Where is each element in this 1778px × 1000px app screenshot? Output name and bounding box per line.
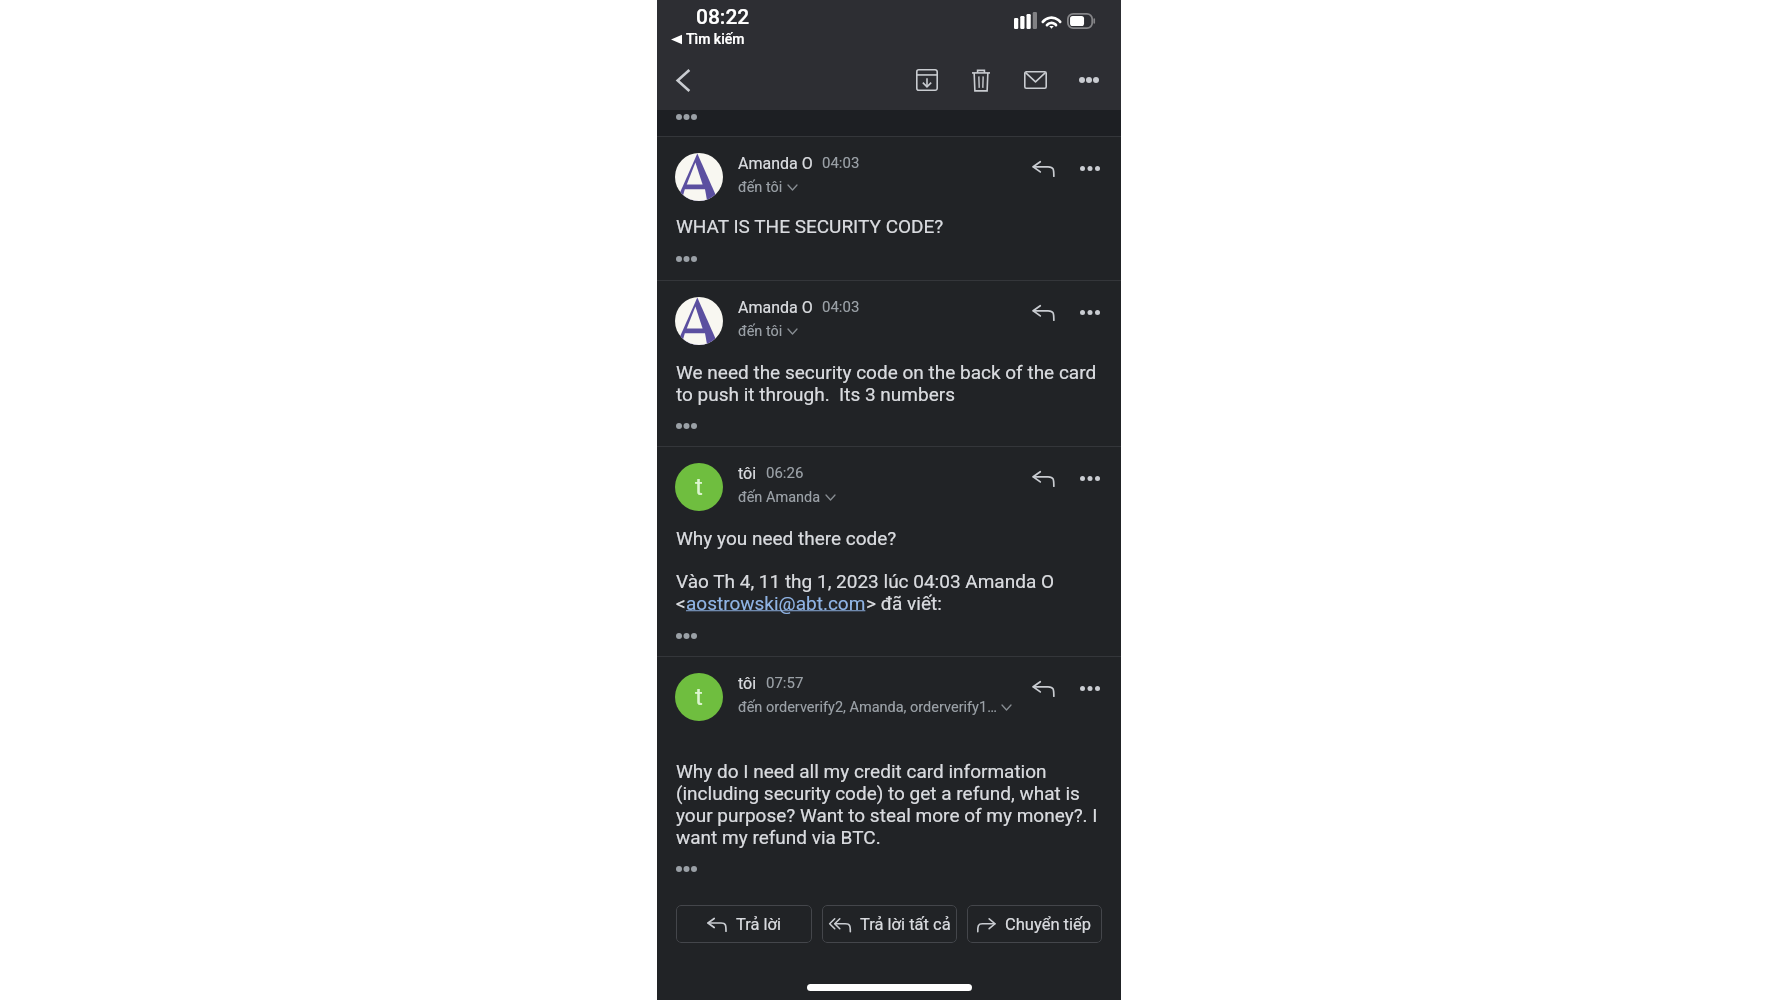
staticText: > đã viết: <box>866 592 942 614</box>
staticText: Why you need there code? <box>676 527 897 549</box>
button[interactable]: Hiện nội dung rút gọn <box>676 256 697 262</box>
staticText: Amanda O <box>738 154 813 173</box>
button[interactable]: Tùy chọn khác <box>1073 670 1107 706</box>
button[interactable]: Tùy chọn khác <box>1073 460 1107 496</box>
button[interactable]: Hiện nội dung rút gọn <box>676 633 697 639</box>
staticText: 06:26 <box>766 464 804 482</box>
staticText: Amanda O <box>738 298 813 317</box>
button[interactable]: Đánh dấu chưa đọc <box>1014 59 1056 101</box>
staticText: Vào Th 4, 11 thg 1, 2023 lúc 04:03 Amand… <box>676 570 1055 592</box>
staticText: tôi <box>738 464 757 483</box>
button[interactable]: aostrowski@abt.com <box>686 592 866 614</box>
button[interactable]: Amanda O <box>738 298 1024 340</box>
button[interactable]: Tùy chọn khác <box>1073 294 1107 330</box>
staticText: đến Amanda <box>738 489 821 506</box>
staticText: đến tôi <box>738 323 783 340</box>
staticText: 04:03 <box>822 298 860 316</box>
staticText: Chuyển tiếp <box>1005 915 1092 934</box>
staticText: < <box>676 592 686 614</box>
staticText: want my refund via BTC. <box>676 826 881 848</box>
button[interactable]: Hiện nội dung rút gọn <box>676 423 697 429</box>
button[interactable]: tôi <box>738 674 1024 716</box>
button[interactable]: Xóa <box>960 59 1002 101</box>
button[interactable]: Chuyển tiếp <box>967 905 1102 943</box>
button[interactable]: Trả lời <box>676 905 812 943</box>
button[interactable]: Amanda O <box>738 154 1024 196</box>
button[interactable]: Lưu trữ <box>906 59 948 101</box>
button[interactable]: Quay lại <box>662 59 704 101</box>
button[interactable]: Hiện nội dung rút gọn <box>676 866 697 872</box>
staticText: Trả lời tất cả <box>860 915 951 934</box>
staticText: (including security code) to get a refun… <box>676 782 1080 804</box>
staticText: t <box>695 683 703 711</box>
button[interactable]: Tùy chọn khác <box>1073 150 1107 186</box>
staticText: tôi <box>738 674 757 693</box>
button[interactable]: tôi <box>738 464 1024 506</box>
button[interactable]: Tùy chọn khác <box>1068 59 1110 101</box>
staticText: your purpose? Want to steal more of my m… <box>676 804 1098 826</box>
button[interactable]: Hiện nội dung rút gọn <box>676 114 697 120</box>
staticText: t <box>695 473 703 501</box>
button[interactable]: Trả lời <box>1024 460 1062 496</box>
staticText: 07:57 <box>766 674 804 692</box>
staticText: Tìm kiếm <box>686 31 745 47</box>
staticText: đến tôi <box>738 179 783 196</box>
staticText: Trả lời <box>736 915 782 934</box>
staticText: WHAT IS THE SECURITY CODE? <box>676 215 944 237</box>
button[interactable]: Trả lời <box>1024 150 1062 186</box>
button[interactable]: Trả lời tất cả <box>822 905 957 943</box>
button[interactable]: Trả lời <box>1024 670 1062 706</box>
staticText: 08:22 <box>696 5 750 30</box>
staticText: đến orderverify2, Amanda, orderverify1… <box>738 699 997 716</box>
staticText: We need the security code on the back of… <box>676 361 1097 383</box>
staticText: to push it through. Its 3 numbers <box>676 383 955 405</box>
button[interactable]: Trả lời <box>1024 294 1062 330</box>
staticText: 04:03 <box>822 154 860 172</box>
staticText: Why do I need all my credit card informa… <box>676 760 1047 782</box>
